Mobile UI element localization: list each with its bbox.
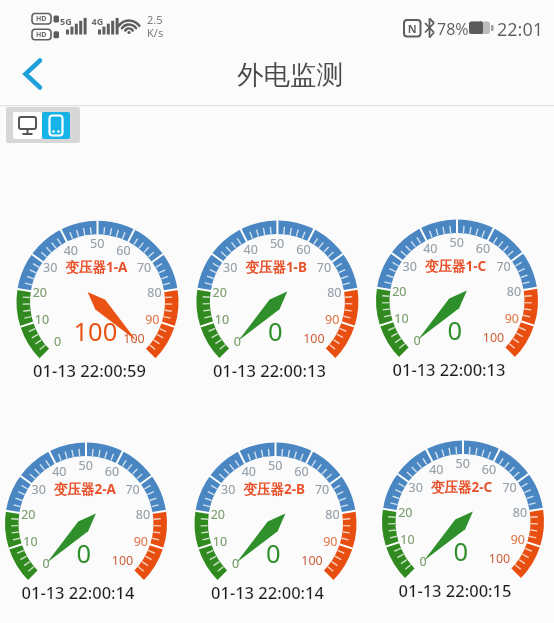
button[interactable] <box>14 52 58 96</box>
button[interactable] <box>13 217 183 387</box>
button[interactable] <box>372 216 542 386</box>
button[interactable] <box>378 437 548 607</box>
button[interactable] <box>13 112 42 139</box>
button[interactable] <box>42 112 70 139</box>
button[interactable] <box>192 217 362 387</box>
button[interactable] <box>191 439 361 609</box>
button[interactable] <box>1 439 171 609</box>
